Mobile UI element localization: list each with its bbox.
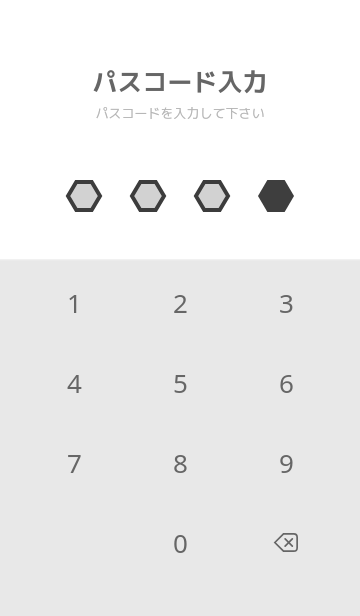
staticText: 2 bbox=[173, 285, 188, 320]
staticText: 0 bbox=[173, 525, 188, 560]
button[interactable]: 3 bbox=[233, 262, 339, 342]
staticText: 1 bbox=[67, 285, 82, 320]
button[interactable]: 6 bbox=[233, 342, 339, 422]
staticText: 7 bbox=[67, 445, 82, 480]
button[interactable]: 8 bbox=[127, 422, 233, 502]
staticText: 6 bbox=[279, 365, 294, 400]
staticText: 5 bbox=[173, 365, 188, 400]
button[interactable]: 4 bbox=[21, 342, 127, 422]
button[interactable]: 2 bbox=[127, 262, 233, 342]
button[interactable]: 9 bbox=[233, 422, 339, 502]
staticText: パスコード入力 bbox=[92, 64, 268, 99]
staticText: パスコードを入力して下さい bbox=[95, 104, 265, 122]
button[interactable]: 5 bbox=[127, 342, 233, 422]
button[interactable]: 1 bbox=[21, 262, 127, 342]
staticText: 4 bbox=[67, 365, 82, 400]
button[interactable]: 7 bbox=[21, 422, 127, 502]
button[interactable]: Delete bbox=[233, 502, 339, 582]
staticText: 3 bbox=[279, 285, 294, 320]
staticText: 9 bbox=[279, 445, 294, 480]
staticText: 8 bbox=[173, 445, 188, 480]
button[interactable]: 0 bbox=[127, 502, 233, 582]
